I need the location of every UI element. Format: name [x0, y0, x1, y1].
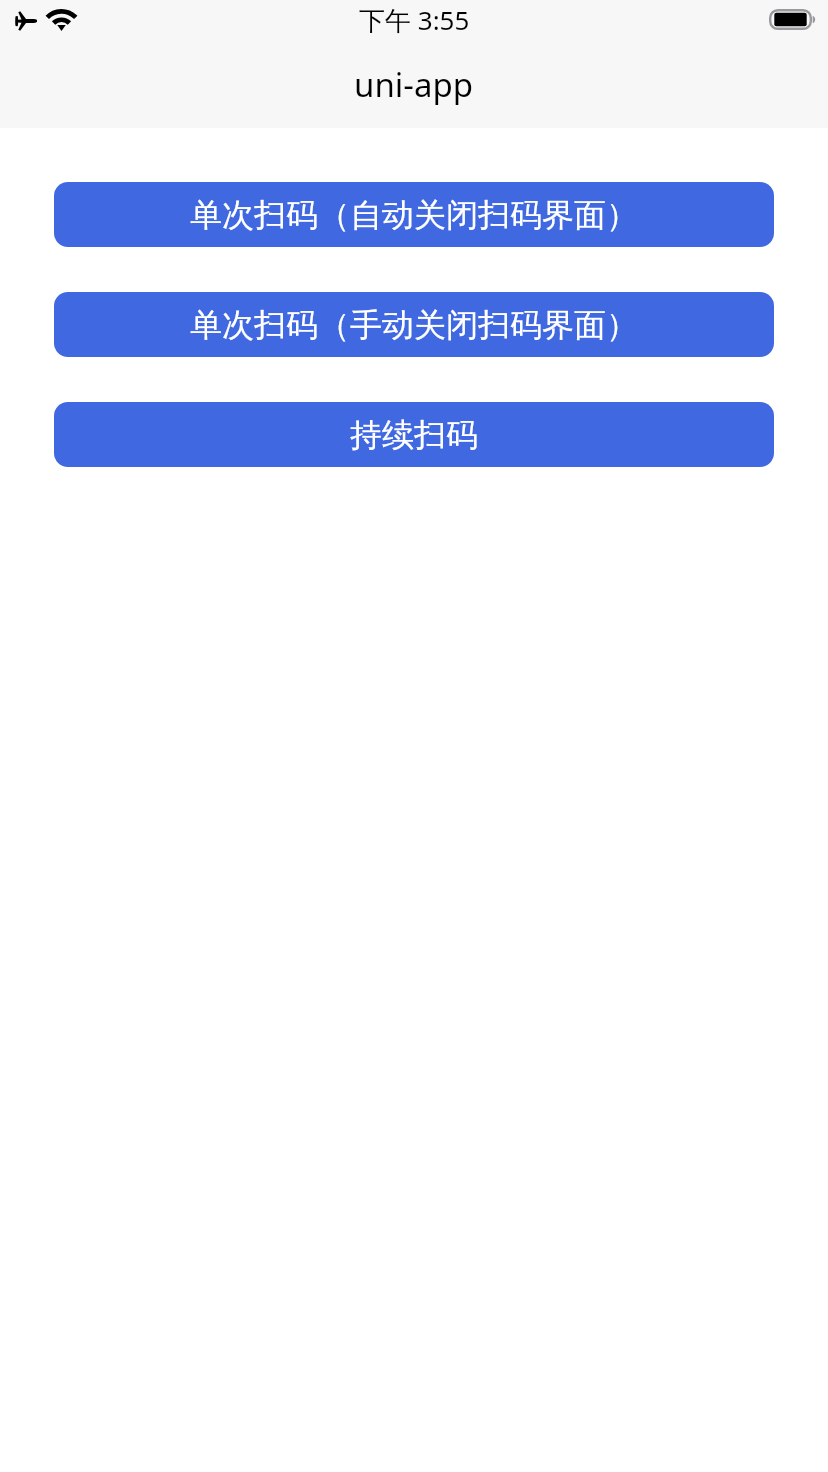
button[interactable]: 持续扫码 — [54, 402, 774, 467]
other: Airplane mode — [15, 11, 37, 31]
staticText: 下午 3:55 — [359, 2, 470, 38]
staticText: uni-app — [354, 62, 474, 107]
staticText: 单次扫码（手动关闭扫码界面） — [190, 305, 638, 345]
other: Wi-Fi — [46, 9, 77, 31]
button[interactable]: 单次扫码（手动关闭扫码界面） — [54, 292, 774, 357]
other: Battery full — [769, 9, 816, 30]
button[interactable]: 单次扫码（自动关闭扫码界面） — [54, 182, 774, 247]
staticText: 单次扫码（自动关闭扫码界面） — [190, 195, 638, 235]
staticText: 持续扫码 — [350, 415, 478, 455]
